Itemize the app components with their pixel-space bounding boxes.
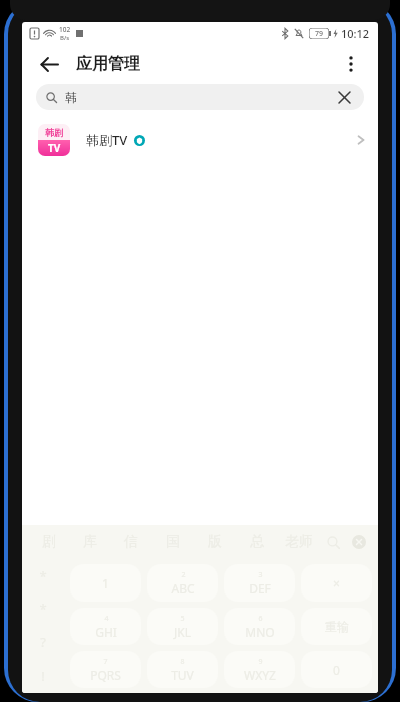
- staticText: 5: [180, 614, 185, 624]
- staticText: 重输: [325, 619, 349, 634]
- staticText: ×: [333, 575, 340, 591]
- button[interactable]: 9: [224, 651, 295, 688]
- staticText: 10:12: [341, 26, 370, 41]
- staticText: *: [39, 600, 47, 618]
- staticText: 8: [180, 657, 185, 667]
- staticText: 4: [104, 614, 109, 624]
- staticText: 0: [333, 662, 340, 678]
- button[interactable]: 韩剧: [22, 118, 378, 162]
- staticText: 库: [83, 533, 97, 551]
- button[interactable]: 重输: [301, 608, 372, 645]
- staticText: 国: [166, 533, 180, 551]
- button[interactable]: Close suggestions: [346, 525, 372, 559]
- staticText: 版: [208, 533, 222, 551]
- staticText: MNO: [245, 624, 275, 640]
- staticText: 7: [103, 657, 108, 667]
- staticText: 79: [315, 29, 324, 39]
- button[interactable]: Back: [32, 47, 66, 81]
- staticText: 应用管理: [76, 54, 140, 74]
- staticText: WXYZ: [244, 667, 276, 683]
- button[interactable]: Clear search: [334, 87, 354, 107]
- staticText: 3: [258, 570, 263, 580]
- staticText: ABC: [171, 580, 195, 596]
- staticText: PQRS: [90, 667, 121, 683]
- staticText: 9: [258, 657, 263, 667]
- staticText: !: [41, 667, 45, 685]
- button[interactable]: More options: [334, 47, 368, 81]
- button[interactable]: !: [22, 659, 64, 693]
- staticText: DEF: [249, 580, 271, 596]
- staticText: 总: [250, 533, 264, 551]
- staticText: 6: [258, 614, 263, 624]
- staticText: TV: [48, 141, 61, 155]
- staticText: GHI: [95, 624, 117, 640]
- staticText: 1: [102, 575, 109, 591]
- staticText: 剧: [42, 533, 56, 551]
- staticText: 老师: [285, 533, 313, 551]
- staticText: TUV: [171, 667, 194, 683]
- button[interactable]: 韩: [36, 84, 364, 110]
- staticText: JKL: [174, 624, 191, 640]
- staticText: 韩: [65, 90, 77, 105]
- staticText: B/s: [60, 34, 70, 42]
- staticText: 2: [181, 570, 186, 580]
- staticText: 韩剧: [45, 127, 63, 138]
- staticText: *: [39, 567, 47, 585]
- button[interactable]: 6: [224, 608, 295, 645]
- staticText: 韩剧TV: [86, 131, 128, 149]
- button[interactable]: 老师: [278, 525, 320, 559]
- staticText: ?: [40, 633, 46, 651]
- staticText: 信: [124, 533, 138, 551]
- staticText: 102: [59, 25, 71, 34]
- button[interactable]: 7: [70, 651, 141, 688]
